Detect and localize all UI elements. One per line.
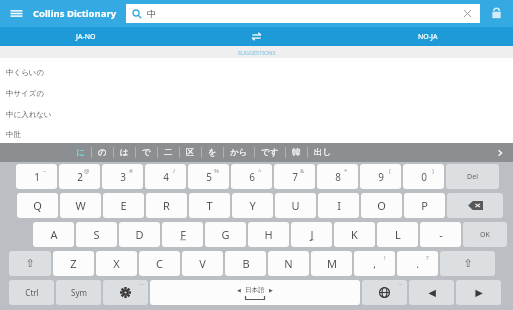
button[interactable]: 区 [186, 147, 195, 158]
button[interactable]: L [377, 222, 418, 247]
button[interactable]: 中 [126, 4, 480, 23]
button[interactable]: JA-NO [0, 27, 171, 46]
button[interactable]: を [208, 147, 217, 158]
button[interactable]: O [361, 193, 402, 218]
button[interactable]: 7 [274, 164, 315, 189]
button[interactable]: 3 [102, 164, 143, 189]
button[interactable]: Keyboard settings [103, 280, 148, 305]
staticText: に [76, 147, 85, 158]
button[interactable]: C [139, 251, 180, 276]
button[interactable]: J [291, 222, 332, 247]
button[interactable]: , [354, 251, 395, 276]
staticText: @ [84, 167, 90, 175]
button[interactable]: Change language [362, 280, 407, 305]
staticText: OK [480, 230, 490, 240]
button[interactable]: 8 [317, 164, 358, 189]
button[interactable]: 韓 [292, 147, 301, 158]
button[interactable]: Q [17, 193, 58, 218]
button[interactable]: 中サイズの [0, 83, 513, 104]
staticText: O [377, 198, 386, 213]
button[interactable]: E [103, 193, 144, 218]
button[interactable]: ⇧ [9, 251, 51, 276]
button[interactable]: 中に入れない [0, 104, 513, 125]
button[interactable]: T [189, 193, 230, 218]
button[interactable]: ⇧ [440, 251, 495, 276]
button[interactable]: Z [53, 251, 94, 276]
button[interactable]: - [420, 222, 461, 247]
button[interactable]: 二 [164, 147, 173, 158]
button[interactable]: Del [446, 164, 499, 189]
button[interactable]: More suggestions [487, 143, 513, 162]
button[interactable]: ▶ [456, 280, 501, 305]
staticText: で [142, 147, 151, 158]
button[interactable]: P [404, 193, 445, 218]
staticText: D [135, 227, 144, 242]
button[interactable]: A [33, 222, 74, 247]
button[interactable]: 1 [16, 164, 57, 189]
staticText: , [373, 257, 376, 271]
staticText: * [344, 167, 348, 175]
button[interactable]: 6 [231, 164, 272, 189]
button[interactable]: 中肚 [0, 125, 513, 143]
staticText: ⇧ [463, 257, 473, 270]
button[interactable]: N [268, 251, 309, 276]
staticText: です [261, 147, 279, 158]
button[interactable]: V [182, 251, 223, 276]
staticText: ⇧ [25, 257, 35, 270]
button[interactable]: K [334, 222, 375, 247]
button[interactable]: I [318, 193, 359, 218]
staticText: W [75, 198, 86, 213]
button[interactable]: . [397, 251, 438, 276]
button[interactable]: Backspace [447, 193, 503, 218]
button[interactable]: で [142, 147, 151, 158]
button[interactable]: Y [232, 193, 273, 218]
staticText: 1 [34, 170, 40, 184]
staticText: JA-NO [76, 32, 96, 42]
button[interactable]: Clear [457, 4, 477, 23]
staticText: Q [33, 198, 42, 213]
button[interactable]: Sym [56, 280, 101, 305]
button[interactable]: の [98, 147, 107, 158]
button[interactable]: Ctrl [9, 280, 54, 305]
staticText: M [327, 256, 337, 271]
button[interactable]: 出し [314, 147, 332, 158]
button[interactable]: U [275, 193, 316, 218]
button[interactable]: D [119, 222, 160, 247]
button[interactable]: X [96, 251, 137, 276]
button[interactable]: G [205, 222, 246, 247]
button[interactable]: 5 [188, 164, 229, 189]
button[interactable]: に [76, 147, 85, 158]
button[interactable]: W [60, 193, 101, 218]
button[interactable]: S [76, 222, 117, 247]
button[interactable]: F [162, 222, 203, 247]
staticText: 8 [335, 170, 341, 184]
staticText: 区 [186, 147, 195, 158]
staticText: 中に入れない [6, 110, 52, 119]
staticText: 中肚 [6, 130, 21, 139]
button[interactable]: ◀ [409, 280, 454, 305]
button[interactable]: Lock [480, 0, 513, 27]
button[interactable]: 9 [360, 164, 401, 189]
button[interactable]: M [311, 251, 352, 276]
button[interactable]: は [120, 147, 129, 158]
staticText: . [416, 257, 419, 271]
staticText: - [439, 227, 443, 242]
button[interactable]: H [248, 222, 289, 247]
button[interactable]: B [225, 251, 266, 276]
staticText: ··· [398, 280, 403, 288]
button[interactable]: 0 [403, 164, 444, 189]
staticText: C [156, 256, 163, 271]
button[interactable]: R [146, 193, 187, 218]
button[interactable]: から [230, 147, 248, 158]
button[interactable]: 2 [59, 164, 100, 189]
button[interactable]: です [261, 147, 279, 158]
button[interactable]: NO-JA [342, 27, 513, 46]
button[interactable]: Menu [0, 0, 33, 27]
button[interactable]: Space [150, 280, 360, 305]
button[interactable]: OK [463, 222, 507, 247]
staticText: 中 [147, 8, 156, 19]
button[interactable]: Swap languages [171, 27, 342, 46]
button[interactable]: 中くらいの [0, 62, 513, 83]
button[interactable]: 4 [145, 164, 186, 189]
staticText: 中くらいの [6, 68, 45, 77]
